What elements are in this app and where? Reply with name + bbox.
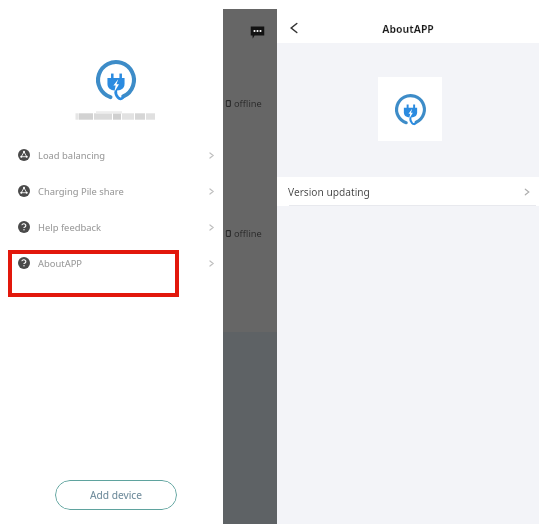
staticText: Add device [90, 488, 142, 502]
staticText: Help feedback [38, 221, 102, 234]
button[interactable]: AboutAPP [0, 245, 222, 281]
staticText: Load balancing [38, 149, 106, 162]
staticText: Version updating [288, 185, 370, 199]
button[interactable]: Add device [55, 480, 177, 510]
staticText: AboutAPP [38, 257, 83, 270]
button[interactable]: Charging Pile share [0, 173, 222, 209]
button[interactable]: Back [280, 14, 308, 42]
staticText: Charging Pile share [38, 185, 124, 198]
button[interactable]: Load balancing [0, 137, 222, 173]
button[interactable]: Version updating [277, 177, 539, 206]
button[interactable]: Help feedback [0, 209, 222, 245]
staticText: offline [234, 227, 262, 240]
staticText: AboutAPP [277, 22, 539, 36]
staticText: offline [234, 97, 262, 110]
